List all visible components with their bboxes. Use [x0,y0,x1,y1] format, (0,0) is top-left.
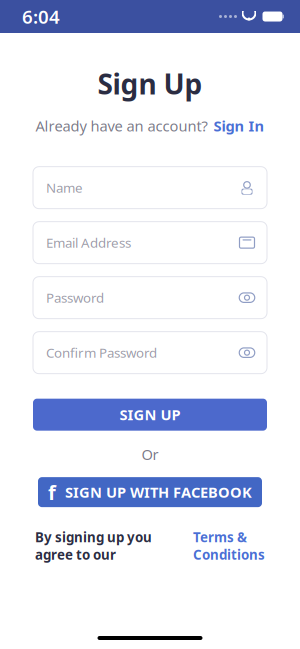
staticText: Terms & Conditions [193,528,265,563]
staticText: Sign Up [97,65,202,102]
button[interactable]: SIGN UP [33,399,267,431]
staticText: f [48,479,56,505]
staticText: Password [46,289,104,306]
staticText: Confirm Password [46,344,157,361]
staticText: SIGN UP [119,405,180,424]
staticText: Or [141,445,158,464]
staticText: By signing up you agree to our [35,528,152,563]
staticText: Already have an account? [35,116,207,136]
staticText: Name [46,179,83,196]
button[interactable]: f [38,477,262,507]
staticText: SIGN UP WITH FACEBOOK [65,482,252,502]
button[interactable]: Sign In [213,116,264,136]
staticText: 6:04 [22,4,60,29]
button[interactable]: Terms & Conditions [193,528,265,563]
staticText: Sign In [213,116,264,136]
staticText: Email Address [46,234,131,251]
